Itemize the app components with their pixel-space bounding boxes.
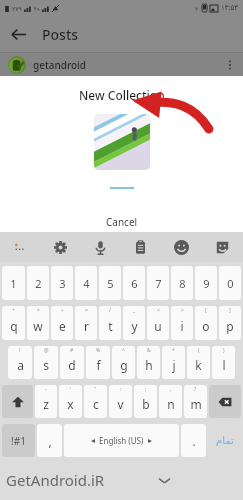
staticText: English (US) bbox=[99, 435, 144, 446]
button[interactable]: English (US) bbox=[64, 424, 179, 457]
staticText: ! bbox=[19, 347, 21, 354]
staticText: ^ bbox=[122, 347, 125, 354]
staticText: = bbox=[85, 307, 88, 314]
button[interactable]: ) bbox=[212, 346, 235, 379]
staticText: b bbox=[142, 396, 150, 412]
button[interactable]: ÷ bbox=[51, 306, 73, 340]
button[interactable]: 0 bbox=[219, 266, 241, 300]
button[interactable]: & bbox=[137, 346, 160, 379]
button[interactable]: , bbox=[37, 424, 62, 457]
staticText: ۲ bbox=[195, 5, 199, 12]
button[interactable]: ^ bbox=[112, 346, 135, 379]
button[interactable]: !#1 bbox=[2, 424, 35, 457]
button[interactable]: Backspace bbox=[209, 385, 241, 418]
button[interactable]: # bbox=[60, 346, 84, 379]
staticText: ۲۷۹ bbox=[12, 5, 22, 12]
staticText: Cancel bbox=[106, 215, 138, 229]
staticText: / bbox=[109, 307, 111, 314]
button[interactable]: Collection cover bbox=[94, 114, 150, 170]
button[interactable]: = bbox=[75, 306, 97, 340]
staticText: !#1 bbox=[11, 434, 26, 448]
staticText: a bbox=[17, 357, 24, 373]
staticText: 2 bbox=[35, 276, 42, 291]
button[interactable]: ! bbox=[8, 346, 32, 379]
button[interactable]: 8 bbox=[171, 266, 193, 300]
staticText: w bbox=[33, 318, 43, 334]
button[interactable]: × bbox=[27, 306, 49, 340]
button[interactable]: 2 bbox=[27, 266, 49, 300]
button[interactable]: < bbox=[147, 306, 169, 340]
button[interactable]: : bbox=[109, 385, 132, 418]
button[interactable]: . bbox=[181, 424, 206, 457]
staticText: 1 bbox=[10, 276, 17, 291]
staticText: _ bbox=[133, 307, 136, 314]
button[interactable]: % bbox=[86, 346, 110, 379]
staticText: 3 bbox=[59, 276, 66, 291]
button[interactable]: Settings bbox=[40, 232, 80, 262]
button[interactable]: , bbox=[159, 385, 182, 418]
button[interactable]: 3 bbox=[51, 266, 73, 300]
staticText: New Collection bbox=[79, 87, 165, 103]
button[interactable]: 5 bbox=[99, 266, 121, 300]
button[interactable]: 7 bbox=[147, 266, 169, 300]
staticText: @ bbox=[44, 347, 49, 354]
staticText: k bbox=[195, 357, 202, 373]
button[interactable]: ( bbox=[187, 346, 210, 379]
staticText: - bbox=[45, 386, 47, 393]
staticText: ) bbox=[223, 347, 225, 354]
button[interactable]: - bbox=[35, 385, 57, 418]
staticText: h bbox=[145, 357, 153, 373]
staticText: j bbox=[172, 357, 176, 373]
button[interactable]: ' bbox=[59, 385, 82, 418]
staticText: + bbox=[12, 307, 15, 314]
staticText: e bbox=[59, 318, 66, 334]
staticText: × bbox=[37, 307, 40, 314]
button[interactable]: ; bbox=[134, 385, 157, 418]
staticText: m bbox=[190, 396, 202, 412]
button[interactable]: 4 bbox=[75, 266, 97, 300]
button[interactable]: 6 bbox=[123, 266, 145, 300]
button[interactable]: More options bbox=[217, 53, 243, 76]
staticText: Posts bbox=[42, 25, 79, 44]
button[interactable]: Voice input bbox=[80, 232, 120, 262]
button[interactable]: + bbox=[2, 306, 25, 340]
staticText: f bbox=[96, 357, 101, 373]
button[interactable]: 9 bbox=[195, 266, 217, 300]
button[interactable]: ? bbox=[184, 385, 207, 418]
staticText: r bbox=[84, 318, 89, 334]
staticText: t bbox=[108, 318, 113, 334]
staticText: # bbox=[70, 347, 74, 354]
button[interactable]: [ bbox=[195, 306, 217, 340]
button[interactable]: Stickers bbox=[202, 232, 243, 262]
button[interactable]: Cancel bbox=[0, 212, 243, 232]
staticText: n bbox=[167, 396, 175, 412]
staticText: * bbox=[172, 347, 175, 354]
button[interactable]: Back bbox=[0, 16, 36, 52]
staticText: u bbox=[154, 318, 162, 334]
button[interactable]: getandroid bbox=[0, 53, 243, 76]
button[interactable]: ] bbox=[219, 306, 241, 340]
staticText: ' bbox=[70, 386, 72, 393]
staticText: < bbox=[157, 307, 160, 314]
button[interactable]: / bbox=[99, 306, 121, 340]
button[interactable]: Shift bbox=[2, 385, 33, 418]
button[interactable]: _ bbox=[123, 306, 145, 340]
staticText: ] bbox=[229, 307, 231, 314]
staticText: تمام bbox=[216, 435, 234, 447]
staticText: 4 bbox=[83, 276, 90, 291]
button[interactable]: " bbox=[84, 385, 107, 418]
staticText: , bbox=[48, 433, 52, 449]
staticText: : bbox=[120, 386, 122, 393]
button[interactable]: Emoji bbox=[161, 232, 202, 262]
staticText: x bbox=[67, 396, 74, 412]
staticText: 6 bbox=[131, 276, 138, 291]
button[interactable]: > bbox=[171, 306, 193, 340]
button[interactable]: تمام bbox=[209, 423, 240, 458]
button[interactable]: * bbox=[162, 346, 185, 379]
staticText: q bbox=[10, 318, 18, 334]
button[interactable]: 1 bbox=[2, 266, 25, 300]
button[interactable]: More bbox=[0, 232, 40, 262]
button[interactable]: Clipboard bbox=[120, 232, 161, 262]
button[interactable]: Hide keyboard bbox=[151, 467, 177, 493]
button[interactable]: @ bbox=[34, 346, 58, 379]
